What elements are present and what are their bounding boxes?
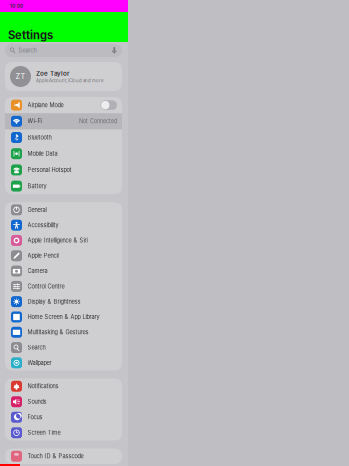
staticText: Apple Account, iCloud and more [36, 78, 103, 83]
staticText: Bluetooth [27, 134, 51, 141]
staticText: Airplane Mode [27, 102, 63, 108]
button[interactable]: Touch ID & Passcode [5, 448, 122, 464]
staticText: General [27, 206, 46, 213]
staticText: Apple Pencil [27, 252, 58, 259]
staticText: Wi-Fi [27, 118, 41, 125]
staticText: Personal Hotspot [27, 166, 71, 173]
button[interactable]: Multitasking & Gestures [5, 325, 122, 340]
button[interactable]: Sounds [5, 394, 122, 409]
button[interactable]: Bluetooth [5, 129, 122, 146]
staticText: Multitasking & Gestures [27, 329, 88, 336]
staticText: Search [27, 344, 45, 351]
button[interactable]: Personal Hotspot [5, 162, 122, 178]
button[interactable]: Accessibility [5, 217, 122, 233]
button[interactable]: Search [5, 340, 122, 355]
button[interactable]: Screen Time [5, 425, 122, 440]
button[interactable]: Focus [5, 409, 122, 425]
button[interactable]: Wallpaper [5, 355, 122, 370]
staticText: Battery [27, 183, 46, 189]
staticText: Focus [27, 414, 42, 421]
button[interactable]: Mobile Data [5, 146, 122, 162]
staticText: Screen Time [27, 429, 60, 436]
staticText: Accessibility [27, 222, 58, 229]
button[interactable]: Notifications [5, 378, 122, 394]
staticText: Sounds [27, 398, 46, 405]
button[interactable]: ZT [5, 62, 122, 91]
staticText: Settings [8, 28, 53, 42]
staticText: Not Connected [79, 118, 117, 125]
staticText: Touch ID & Passcode [27, 453, 83, 460]
button[interactable]: General [5, 202, 122, 217]
staticText: Display & Brightness [27, 298, 80, 305]
button[interactable]: Wi-Fi [5, 113, 122, 129]
staticText: Search [18, 47, 36, 54]
staticText: Notifications [27, 383, 58, 390]
staticText: Zoe Taylor [36, 70, 69, 77]
button[interactable]: Display & Brightness [5, 294, 122, 309]
button[interactable]: Battery [5, 178, 122, 194]
staticText: Mobile Data [27, 150, 57, 157]
staticText: Wallpaper [27, 359, 51, 366]
staticText: 10:00 [10, 3, 23, 9]
button[interactable]: Airplane Mode [5, 97, 122, 113]
button[interactable]: Apple Pencil [5, 248, 122, 263]
staticText: ZT [15, 72, 25, 81]
button[interactable]: Camera [5, 263, 122, 279]
staticText: Control Centre [27, 283, 64, 290]
staticText: Camera [27, 268, 47, 274]
staticText: Home Screen & App Library [27, 314, 99, 320]
staticText: Apple Intelligence & Siri [27, 237, 87, 244]
button[interactable]: Search [5, 44, 122, 57]
button[interactable]: Home Screen & App Library [5, 309, 122, 325]
button[interactable]: Apple Intelligence & Siri [5, 233, 122, 248]
button[interactable]: Control Centre [5, 279, 122, 294]
